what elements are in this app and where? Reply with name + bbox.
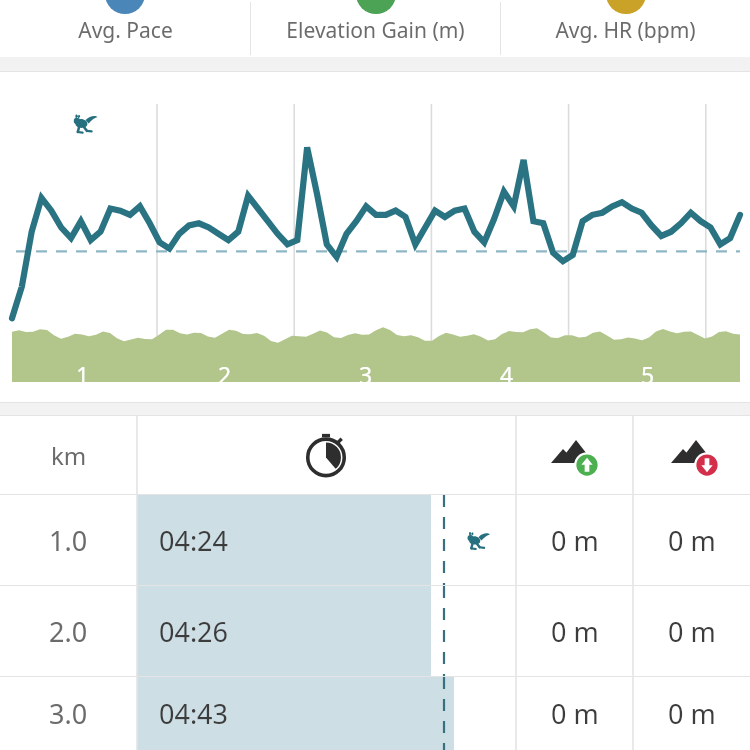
button[interactable]: 3.0 xyxy=(0,677,750,750)
button[interactable]: 1.0 xyxy=(0,495,750,585)
staticText: 0 m xyxy=(668,522,716,559)
staticText: 0 m xyxy=(668,613,716,650)
staticText: 04:43 xyxy=(159,695,229,732)
staticText: 4 xyxy=(500,359,514,390)
staticText: 04:26 xyxy=(159,613,229,650)
button[interactable]: Duration xyxy=(302,431,350,479)
staticText: 3.0 xyxy=(49,695,88,732)
staticText: Elevation Gain (m) xyxy=(286,16,465,45)
staticText: 5 xyxy=(641,359,655,390)
staticText: 2.0 xyxy=(49,613,88,650)
button[interactable]: Elevation Gain (m) xyxy=(251,0,500,57)
staticText: 0 m xyxy=(551,695,599,732)
button[interactable]: Avg. Pace xyxy=(0,0,250,57)
button[interactable]: Elevation gain xyxy=(550,430,600,480)
staticText: 3 xyxy=(359,359,373,390)
button[interactable]: km xyxy=(0,416,137,494)
staticText: 1.0 xyxy=(49,522,88,559)
button[interactable]: Avg. HR (bpm) xyxy=(501,0,750,57)
staticText: km xyxy=(51,439,87,472)
staticText: 0 m xyxy=(551,522,599,559)
staticText: 04:24 xyxy=(159,522,229,559)
staticText: 1 xyxy=(76,359,90,390)
staticText: 0 m xyxy=(551,613,599,650)
button[interactable]: Elevation loss xyxy=(670,430,720,480)
button[interactable]: 2.0 xyxy=(0,586,750,676)
staticText: Avg. HR (bpm) xyxy=(555,16,696,45)
staticText: 0 m xyxy=(668,695,716,732)
staticText: 2 xyxy=(218,359,232,390)
staticText: Avg. Pace xyxy=(78,16,173,45)
